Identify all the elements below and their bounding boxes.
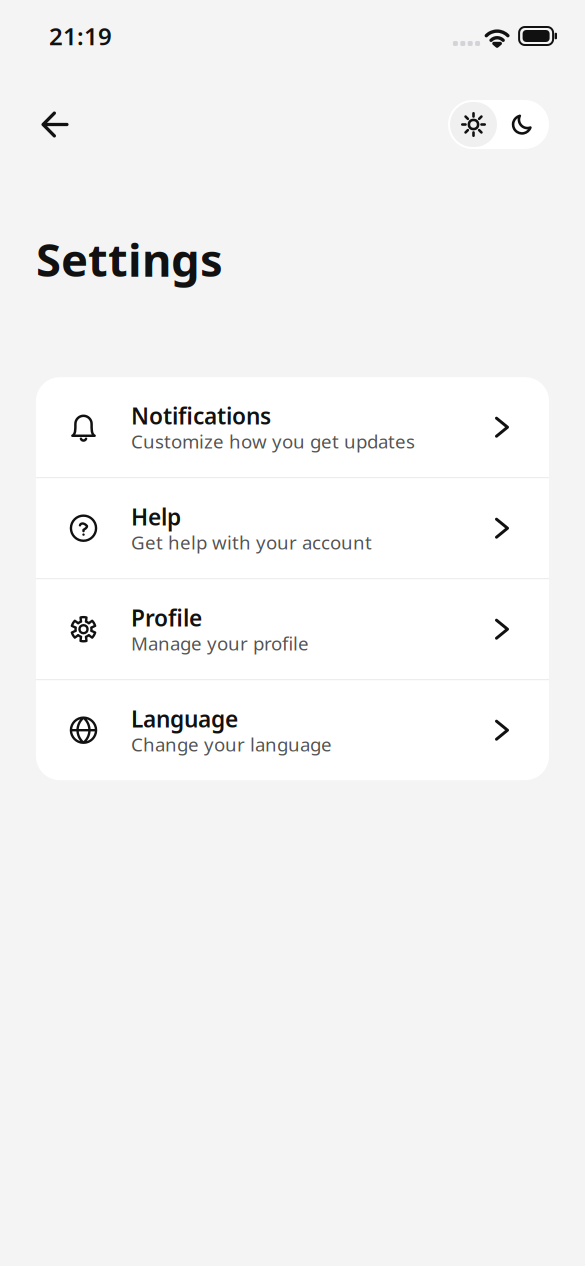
- staticText: Notifications: [131, 401, 271, 431]
- staticText: Language: [131, 704, 238, 734]
- staticText: Help: [131, 502, 181, 532]
- staticText: Change your language: [131, 732, 332, 757]
- button[interactable]: Dark appearance: [497, 102, 547, 147]
- staticText: 21:19: [49, 20, 112, 52]
- staticText: Manage your profile: [131, 631, 309, 656]
- button[interactable]: Back: [31, 100, 79, 148]
- staticText: Get help with your account: [131, 530, 372, 555]
- staticText: Profile: [131, 603, 202, 633]
- button[interactable]: Language: [36, 680, 549, 780]
- button[interactable]: Profile: [36, 579, 549, 679]
- button[interactable]: Help: [36, 478, 549, 578]
- staticText: Settings: [36, 229, 223, 289]
- button[interactable]: Notifications: [36, 377, 549, 477]
- staticText: Customize how you get updates: [131, 429, 415, 454]
- button[interactable]: Light appearance: [450, 102, 497, 147]
